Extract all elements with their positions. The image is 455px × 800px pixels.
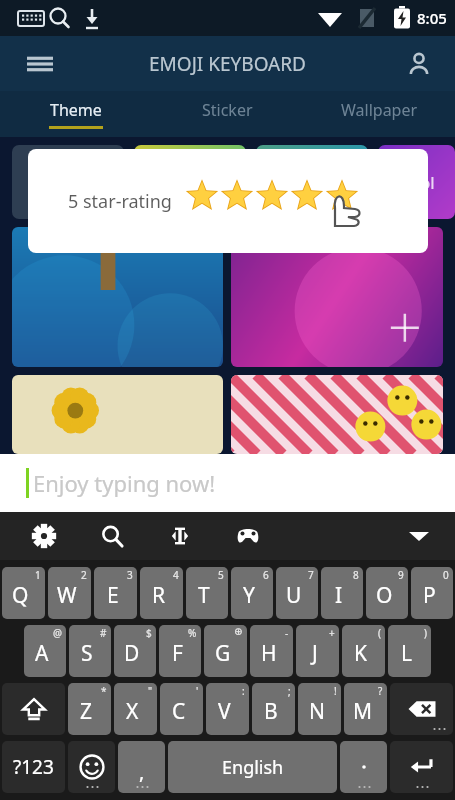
button[interactable]: L [388,625,431,677]
button[interactable] [231,375,443,454]
button[interactable]: W [48,567,91,619]
staticText: EMOJI KEYBOARD [149,51,306,77]
button[interactable]: P [411,567,453,619]
button[interactable] [340,741,387,793]
staticText: E [107,581,119,610]
button[interactable]: T [186,567,228,619]
button[interactable]: B [252,683,295,735]
staticText: 7 [308,568,314,582]
button[interactable]: 5 star-rating [28,149,428,253]
staticText: O [376,581,393,610]
button[interactable]: Z [68,683,111,735]
button[interactable]: G [204,625,247,677]
staticText: Wallpaper [341,99,418,121]
button[interactable]: M [344,683,387,735]
button[interactable]: Account [395,40,443,88]
staticText: ⊕ [234,626,243,638]
button[interactable]: S [69,625,111,677]
button[interactable] [12,375,223,454]
staticText: # [100,626,107,640]
staticText: D [124,639,140,668]
button[interactable]: Shift [2,683,65,735]
button[interactable]: E [94,567,137,619]
staticText: L [401,639,413,668]
staticText: N [309,697,325,726]
button[interactable]: D [114,625,156,677]
staticText: R [152,581,166,610]
staticText: ; [288,684,291,698]
button[interactable]: N [298,683,341,735]
staticText: S [81,639,93,668]
button[interactable]: Wallpaper [303,91,455,137]
staticText: X [126,697,139,726]
button[interactable]: Y [231,567,273,619]
button[interactable]: J [296,625,339,677]
staticText: , [139,758,145,785]
button[interactable]: Sticker [151,91,303,137]
staticText: B [264,697,278,726]
staticText: 5 star-rating [68,189,172,214]
button[interactable]: Emoji [68,741,115,793]
staticText: Simple [285,171,340,194]
staticText: - [285,626,289,640]
staticText: A [35,639,49,668]
staticText: : [242,684,245,698]
button[interactable]: Settings [26,518,62,554]
button[interactable]: Cool [378,145,455,219]
button[interactable]: V [206,683,249,735]
staticText: H [261,639,277,668]
button[interactable]: Search [94,518,130,554]
button[interactable]: Menu [16,40,64,88]
staticText: M [353,697,373,726]
staticText: V [218,697,231,726]
button[interactable]: , [118,741,165,793]
button[interactable] [231,227,443,367]
staticText: 4 [173,568,179,582]
button[interactable]: R [140,567,183,619]
staticText: Sticker [202,99,253,121]
staticText: 8:05 [417,8,447,28]
staticText: T [198,581,210,610]
staticText: C [172,697,186,726]
staticText: % [188,626,197,640]
button[interactable]: X [114,683,157,735]
button[interactable]: Theme [0,91,151,137]
button[interactable]: Enjoy typing now! [0,454,455,512]
button[interactable]: Backspace [390,683,453,735]
staticText: ( [378,626,381,640]
staticText: Y [243,581,255,610]
staticText: 5 [218,568,224,582]
staticText: ! [334,684,337,698]
button[interactable]: DIY Theme [12,145,124,219]
button[interactable]: K [342,625,385,677]
button[interactable]: A [24,625,66,677]
button[interactable]: I [321,567,363,619]
button[interactable]: Fresh [134,145,246,219]
staticText: $ [146,626,152,640]
staticText: Fresh [168,171,212,194]
button[interactable]: ?123 [2,741,65,793]
button[interactable]: Collapse keyboard [399,516,439,556]
button[interactable]: C [160,683,203,735]
button[interactable]: Enter [390,741,453,793]
staticText: F [172,639,183,668]
staticText: Theme [50,99,102,121]
staticText: 8 [353,568,359,582]
button[interactable]: Games [230,518,266,554]
staticText: Q [12,581,29,610]
staticText: J [312,639,318,668]
staticText: 0 [443,568,449,582]
button[interactable]: U [276,567,318,619]
staticText: 9 [398,568,404,582]
button[interactable]: Q [2,567,45,619]
button[interactable]: Simple [256,145,368,219]
staticText: 3 [127,568,133,582]
button[interactable] [12,227,223,367]
staticText: 1 [35,568,41,582]
staticText: P [423,581,436,610]
button[interactable]: H [250,625,293,677]
button[interactable]: O [366,567,408,619]
button[interactable]: Text editing [162,518,198,554]
button[interactable]: F [159,625,201,677]
button[interactable]: English [168,741,337,793]
